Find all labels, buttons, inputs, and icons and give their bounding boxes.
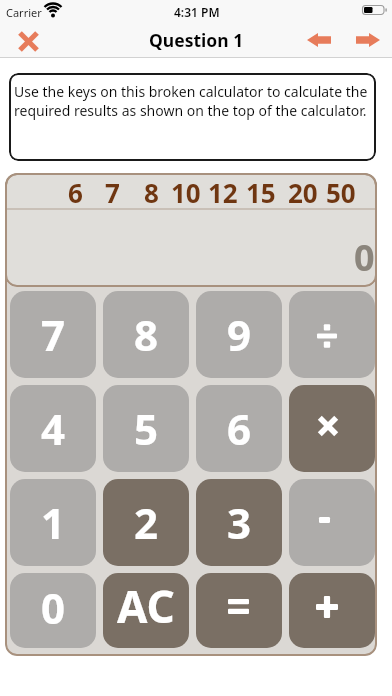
- staticText: 6: [227, 400, 252, 457]
- button[interactable]: [14, 27, 42, 55]
- staticText: 3: [227, 494, 252, 551]
- button[interactable]: 9: [196, 291, 282, 378]
- staticText: 50: [326, 175, 356, 210]
- staticText: 8: [144, 175, 159, 210]
- staticText: 0: [354, 233, 375, 282]
- button[interactable]: [289, 291, 375, 378]
- button[interactable]: [352, 28, 384, 52]
- button[interactable]: [303, 28, 335, 52]
- button[interactable]: [289, 385, 375, 472]
- staticText: 4:31 PM: [174, 4, 220, 20]
- button[interactable]: [289, 573, 375, 648]
- button[interactable]: 1: [10, 479, 96, 566]
- staticText: Carrier: [6, 5, 42, 20]
- button[interactable]: 3: [196, 479, 282, 566]
- staticText: Use the keys on this broken calculator t…: [14, 82, 368, 120]
- staticText: 10: [171, 175, 201, 210]
- button[interactable]: 4: [10, 385, 96, 472]
- staticText: 0: [41, 579, 66, 636]
- button[interactable]: AC: [103, 573, 189, 648]
- button[interactable]: 8: [103, 291, 189, 378]
- button[interactable]: 6: [196, 385, 282, 472]
- staticText: 12: [208, 175, 238, 210]
- staticText: 4: [41, 400, 66, 457]
- staticText: 2: [134, 494, 159, 551]
- button[interactable]: [196, 573, 282, 648]
- staticText: AC: [117, 576, 175, 636]
- staticText: 15: [246, 175, 276, 210]
- staticText: 7: [105, 175, 120, 210]
- button[interactable]: 5: [103, 385, 189, 472]
- staticText: 20: [288, 175, 318, 210]
- staticText: 9: [227, 306, 252, 363]
- staticText: Question 1: [149, 28, 244, 52]
- button[interactable]: [289, 479, 375, 566]
- staticText: 6: [68, 175, 83, 210]
- button[interactable]: 0: [10, 573, 96, 648]
- staticText: 1: [41, 494, 66, 551]
- button[interactable]: 2: [103, 479, 189, 566]
- staticText: 8: [134, 306, 159, 363]
- staticText: 7: [41, 306, 66, 363]
- button[interactable]: 7: [10, 291, 96, 378]
- staticText: 5: [134, 400, 159, 457]
